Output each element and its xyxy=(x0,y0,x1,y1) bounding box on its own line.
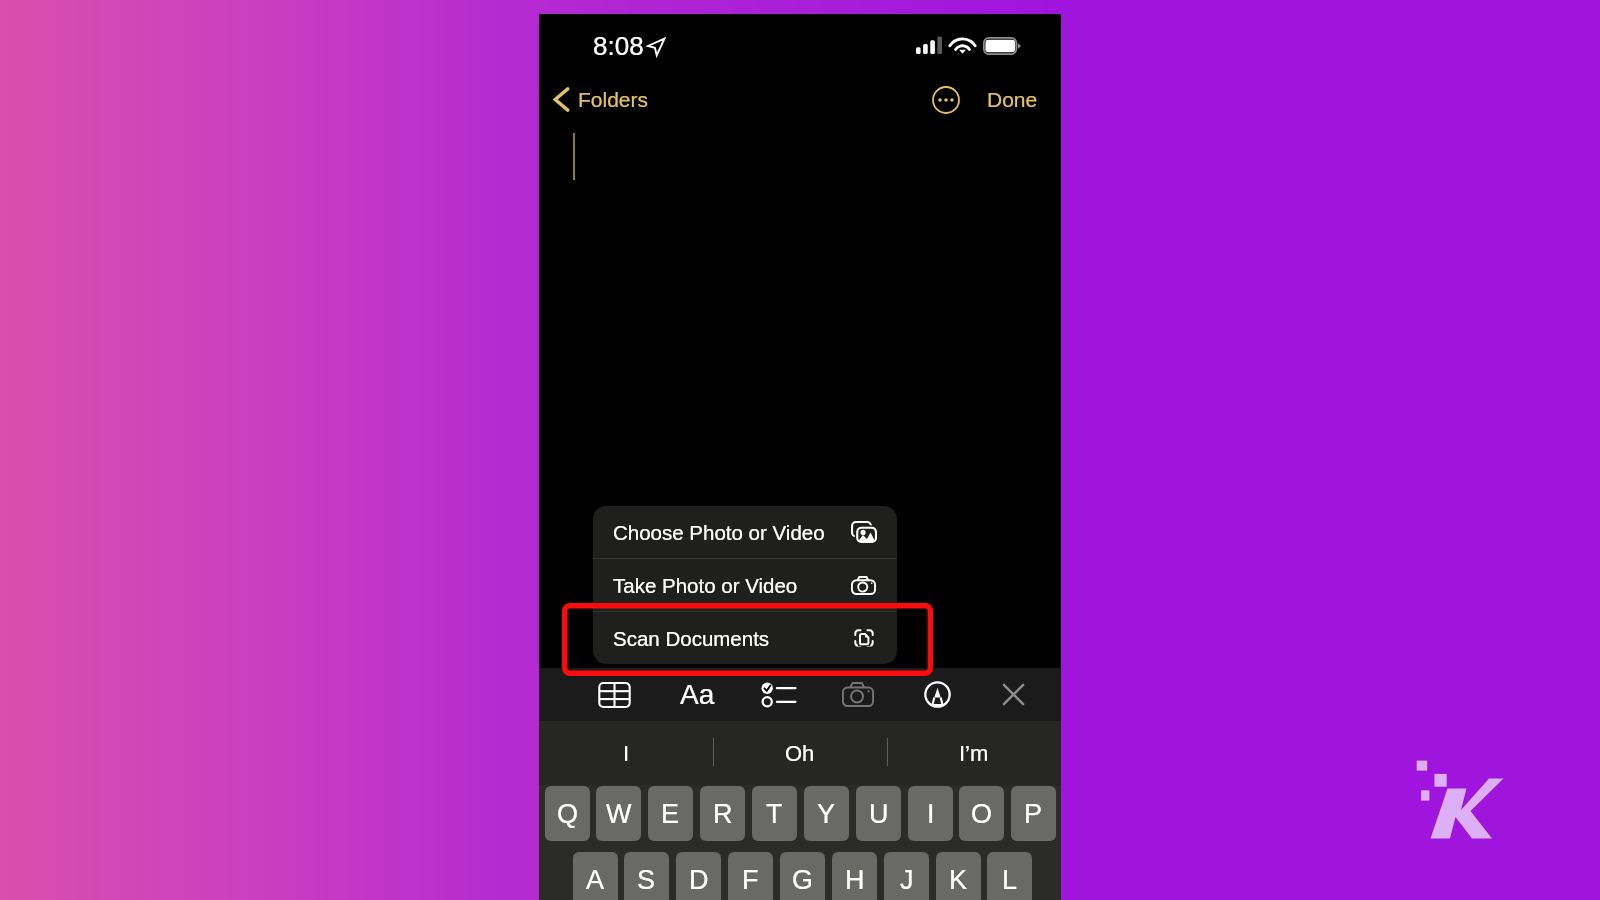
button[interactable]: Checklist xyxy=(758,668,798,721)
button[interactable]: P xyxy=(1011,786,1056,841)
button[interactable]: W xyxy=(596,786,641,841)
button[interactable]: O xyxy=(959,786,1004,841)
button[interactable]: U xyxy=(856,786,901,841)
button[interactable]: Done xyxy=(979,70,1045,128)
staticText: E xyxy=(661,799,680,829)
button[interactable]: Take Photo or Video xyxy=(593,559,897,611)
button[interactable]: Close xyxy=(993,668,1033,721)
staticText: Folders xyxy=(578,88,649,111)
button[interactable]: F xyxy=(728,852,773,900)
staticText: D xyxy=(689,865,709,895)
button[interactable]: I’m xyxy=(887,721,1061,785)
staticText: H xyxy=(845,865,865,895)
button[interactable]: R xyxy=(700,786,745,841)
staticText: Choose Photo or Video xyxy=(613,521,825,544)
button[interactable]: J xyxy=(884,852,929,900)
button[interactable]: Folders xyxy=(554,70,659,128)
staticText: K xyxy=(949,865,968,895)
button[interactable]: H xyxy=(832,852,877,900)
button[interactable]: Q xyxy=(545,786,590,841)
button[interactable]: Note body xyxy=(539,128,1061,668)
button[interactable]: D xyxy=(676,852,721,900)
button[interactable]: I xyxy=(539,721,713,785)
staticText: Done xyxy=(987,88,1038,111)
staticText: L xyxy=(1002,865,1018,895)
staticText: O xyxy=(971,799,993,829)
staticText: W xyxy=(606,799,632,829)
staticText: I xyxy=(927,799,935,829)
button[interactable]: T xyxy=(752,786,797,841)
staticText: I xyxy=(623,741,630,766)
button[interactable]: Scan Documents xyxy=(593,612,897,664)
staticText: I’m xyxy=(959,741,989,766)
staticText: Scan Documents xyxy=(613,627,770,650)
staticText: Y xyxy=(817,799,836,829)
staticText: F xyxy=(742,865,759,895)
button[interactable]: K xyxy=(936,852,981,900)
staticText: Aa xyxy=(680,679,715,710)
staticText: Q xyxy=(557,799,579,829)
staticText: Oh xyxy=(785,741,815,766)
button[interactable]: Markup xyxy=(917,668,957,721)
staticText: Take Photo or Video xyxy=(613,574,798,597)
staticText: S xyxy=(637,865,656,895)
button[interactable]: L xyxy=(987,852,1032,900)
button[interactable]: Format text xyxy=(676,668,718,721)
button[interactable]: I xyxy=(908,786,953,841)
staticText: P xyxy=(1024,799,1043,829)
staticText: R xyxy=(713,799,733,829)
button[interactable]: A xyxy=(573,852,618,900)
staticText: T xyxy=(766,799,783,829)
staticText: 8:08 xyxy=(593,31,644,60)
staticText: G xyxy=(792,865,814,895)
staticText: U xyxy=(869,799,889,829)
button[interactable]: Choose Photo or Video xyxy=(593,506,897,558)
button[interactable]: E xyxy=(648,786,693,841)
staticText: J xyxy=(900,865,914,895)
button[interactable]: Oh xyxy=(713,721,887,785)
button[interactable]: More options xyxy=(932,86,960,114)
staticText: A xyxy=(586,865,605,895)
button[interactable]: S xyxy=(624,852,669,900)
button[interactable]: Table xyxy=(594,668,634,721)
button[interactable]: Y xyxy=(804,786,849,841)
button[interactable]: Camera xyxy=(838,668,878,721)
button[interactable]: G xyxy=(780,852,825,900)
